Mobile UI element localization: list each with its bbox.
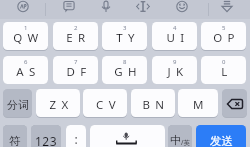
staticText: 1 [24, 24, 28, 32]
button[interactable]: 中 [168, 125, 192, 147]
staticText: 123 [35, 133, 57, 147]
button[interactable]: 分词 [3, 89, 32, 117]
staticText: GH [114, 64, 142, 80]
staticText: 符 [9, 134, 21, 147]
staticText: 中 [170, 133, 181, 147]
button[interactable]: TY [102, 22, 147, 50]
staticText: OP [213, 30, 240, 46]
staticText: /英 [181, 138, 190, 147]
staticText: 4 [173, 24, 177, 32]
button[interactable] [222, 89, 247, 117]
staticText: 7 [74, 58, 78, 66]
staticText: M [193, 97, 209, 113]
button[interactable]: DF [53, 56, 98, 84]
staticText: QW [13, 30, 44, 46]
button[interactable]: : [66, 125, 86, 147]
button[interactable] [90, 125, 165, 147]
button[interactable]: 发送 [196, 125, 246, 147]
staticText: ER [66, 30, 91, 46]
staticText: BN [142, 97, 170, 113]
staticText: 3 [123, 24, 127, 32]
button[interactable]: AS [3, 56, 48, 84]
staticText: DF [66, 64, 92, 80]
staticText: L [221, 64, 233, 80]
button[interactable]: BN [131, 89, 175, 117]
staticText: 6 [24, 58, 28, 66]
staticText: UI [166, 30, 190, 46]
button[interactable]: Hide keyboard [216, 0, 238, 16]
button[interactable]: Voice input [95, 0, 117, 16]
staticText: 5 [222, 24, 226, 32]
staticText: TY [116, 30, 140, 46]
button[interactable]: CV [83, 89, 127, 117]
staticText: ZX [49, 97, 74, 113]
button[interactable]: UI [152, 22, 197, 50]
button[interactable]: Messages [58, 0, 80, 16]
staticText: CV [96, 97, 121, 113]
button[interactable]: ZX [36, 89, 80, 117]
button[interactable]: 123 [31, 125, 61, 147]
button[interactable]: OP [201, 22, 246, 50]
button[interactable]: 符 [3, 125, 27, 147]
staticText: 9 [173, 58, 177, 66]
staticText: : [74, 131, 78, 147]
staticText: 发送 [210, 134, 233, 147]
staticText: 8 [123, 58, 127, 66]
staticText: 0 [222, 58, 226, 66]
staticText: JK [167, 64, 189, 80]
button[interactable]: ER [53, 22, 98, 50]
button[interactable]: Input method logo [12, 0, 34, 16]
button[interactable]: L [201, 56, 246, 84]
button[interactable]: Emoticons [171, 0, 193, 16]
button[interactable]: JK [152, 56, 197, 84]
staticText: AS [16, 64, 41, 80]
staticText: 2 [74, 24, 78, 32]
button[interactable]: M [178, 89, 218, 117]
staticText: 分词 [7, 98, 29, 112]
button[interactable]: QW [3, 22, 48, 50]
button[interactable]: GH [102, 56, 147, 84]
button[interactable]: Move cursor [132, 0, 154, 16]
